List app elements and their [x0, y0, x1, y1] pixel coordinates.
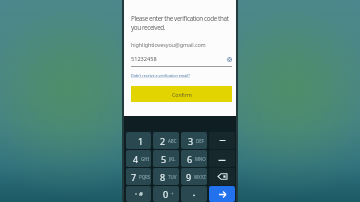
staticText: TUV — [168, 174, 177, 180]
staticText: + — [171, 191, 174, 197]
button[interactable]: 0 — [153, 186, 179, 202]
staticText: MNO — [195, 156, 206, 162]
staticText: Please enter the verification code that … — [131, 14, 233, 32]
button[interactable]: Clear — [225, 55, 233, 63]
staticText: # — [139, 190, 143, 198]
button[interactable]: . — [181, 186, 207, 202]
staticText: 51232458 — [131, 55, 225, 63]
button[interactable]: 9 — [181, 168, 207, 185]
staticText: 8 — [160, 171, 166, 183]
staticText: highlightlovesyou@gmail.com — [131, 41, 206, 48]
staticText: 6 — [187, 153, 193, 165]
button[interactable]: Didn't receive a verification email? — [131, 73, 190, 78]
staticText: 9 — [186, 171, 192, 183]
staticText: ABC — [168, 138, 177, 144]
button[interactable]: 7 — [126, 168, 151, 185]
staticText: 2 — [160, 135, 166, 147]
staticText: GHI — [141, 156, 149, 162]
button[interactable]: _ — [209, 150, 235, 167]
staticText: Confirm — [172, 91, 192, 98]
staticText: JKL — [169, 156, 176, 162]
staticText: 3 — [188, 135, 194, 147]
button[interactable]: 1 — [126, 132, 151, 149]
staticText: PQRS — [139, 174, 151, 180]
button[interactable]: Confirm — [131, 86, 232, 102]
button[interactable]: 3 — [181, 132, 207, 149]
button[interactable]: del — [209, 168, 235, 185]
button[interactable]: 8 — [153, 168, 179, 185]
staticText: 1 — [138, 135, 144, 147]
button[interactable]: 6 — [181, 150, 207, 167]
button[interactable]: 5 — [153, 150, 179, 167]
staticText: DEF — [196, 138, 204, 144]
button[interactable]: *# — [126, 186, 151, 202]
button[interactable]: 2 — [153, 132, 179, 149]
staticText: WXYZ — [194, 174, 206, 180]
button[interactable]: enter — [209, 186, 235, 202]
staticText: 7 — [131, 171, 137, 183]
staticText: 5 — [161, 153, 167, 165]
staticText: 0 — [163, 188, 169, 200]
button[interactable]: - — [209, 132, 235, 149]
staticText: 4 — [133, 153, 139, 165]
button[interactable]: 4 — [126, 150, 151, 167]
